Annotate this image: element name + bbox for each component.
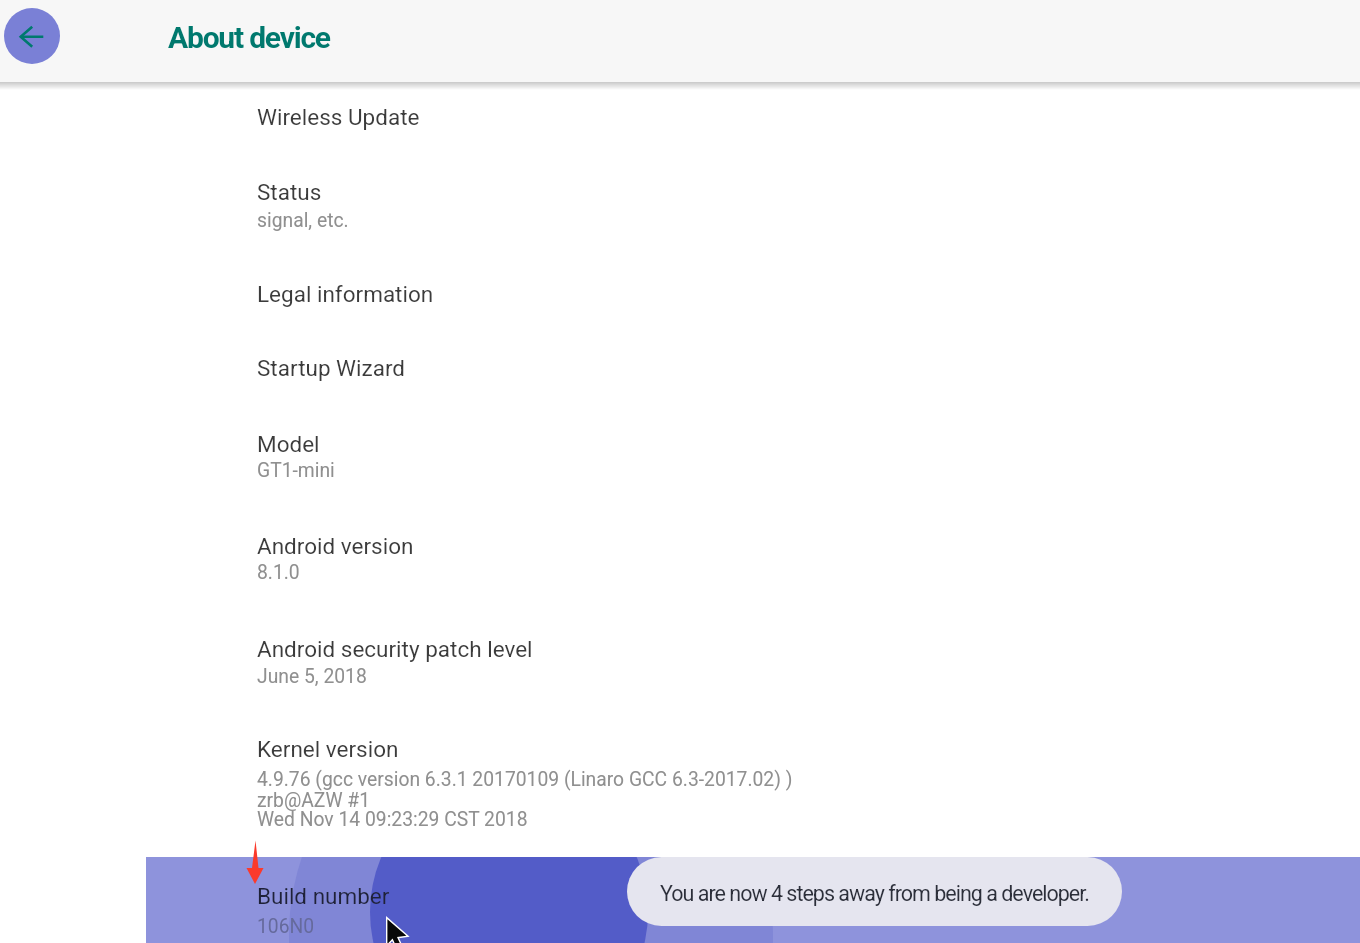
staticText: Kernel version [257, 736, 399, 762]
button[interactable]: Android security patch level [0, 612, 1360, 714]
staticText: June 5, 2018 [257, 665, 367, 688]
button[interactable]: Model [0, 408, 1360, 510]
staticText: Android version [257, 533, 414, 559]
staticText: Wed Nov 14 09:23:29 CST 2018 [257, 808, 528, 831]
staticText: Build number [257, 883, 390, 909]
staticText: You are now 4 steps away from being a de… [660, 881, 1089, 906]
staticText: Legal information [257, 281, 434, 307]
staticText: signal, etc. [257, 209, 349, 232]
button[interactable]: Back [4, 8, 60, 64]
staticText: 8.1.0 [257, 561, 300, 584]
button[interactable]: Legal information [0, 259, 1360, 333]
staticText: 106N0 [257, 915, 315, 938]
staticText: Android security patch level [257, 636, 533, 662]
staticText: Startup Wizard [257, 355, 406, 381]
button[interactable]: Kernel version [0, 714, 1360, 857]
staticText: Model [257, 431, 320, 457]
staticText: Status [257, 179, 322, 205]
staticText: GT1-mini [257, 459, 335, 482]
button[interactable]: Android version [0, 510, 1360, 612]
button[interactable]: Build number [146, 857, 1360, 943]
staticText: 4.9.76 (gcc version 6.3.1 20170109 (Lina… [257, 768, 793, 791]
staticText: zrb@AZW #1 [257, 789, 371, 812]
button[interactable]: Status [0, 157, 1360, 259]
button[interactable]: Wireless Update [0, 82, 1360, 157]
staticText: Wireless Update [257, 104, 420, 130]
button[interactable]: Startup Wizard [0, 333, 1360, 408]
staticText: About device [168, 20, 330, 55]
